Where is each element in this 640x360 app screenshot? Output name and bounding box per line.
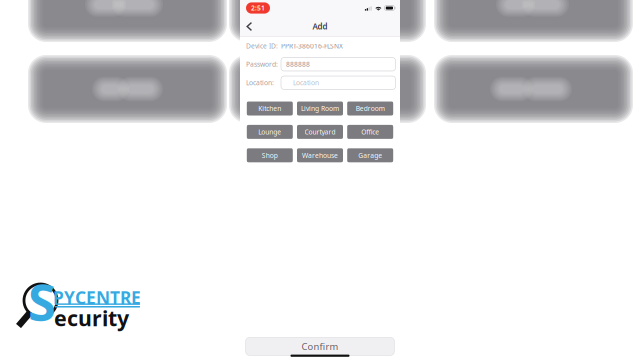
staticText: Kitchen [258, 104, 281, 113]
staticText: Add [312, 21, 327, 32]
button[interactable]: Confirm [246, 337, 394, 355]
staticText: Bedroom [356, 104, 385, 113]
button[interactable]: Lounge [247, 125, 293, 139]
staticText: 2:51 [251, 4, 265, 12]
button[interactable]: Kitchen [247, 101, 293, 115]
staticText: Living Room [301, 104, 339, 113]
staticText: PYCENTRE [53, 286, 141, 309]
button[interactable]: Living Room [297, 101, 343, 115]
button[interactable]: Bedroom [347, 101, 393, 115]
staticText: Office [361, 127, 379, 136]
staticText: S [28, 267, 56, 335]
button[interactable]: Office [347, 125, 393, 139]
button[interactable]: Warehouse [297, 148, 343, 162]
staticText: Lounge [258, 127, 281, 136]
button[interactable]: Back [242, 17, 257, 36]
staticText: Shop [262, 151, 278, 160]
staticText: Device ID: [246, 42, 278, 50]
button[interactable]: Shop [247, 148, 293, 162]
button[interactable]: Garage [347, 148, 393, 162]
staticText: ecurity [54, 304, 129, 332]
staticText: PPRT-386016-FLSNX [281, 42, 343, 50]
staticText: Courtyard [304, 127, 335, 136]
staticText: Warehouse [302, 151, 338, 160]
staticText: Location: [246, 78, 274, 87]
staticText: Garage [358, 151, 382, 160]
staticText: Password: [246, 60, 278, 69]
staticText: Location [293, 78, 319, 87]
button[interactable]: Courtyard [297, 125, 343, 139]
staticText: Confirm [301, 340, 338, 353]
staticText: 888888 [286, 60, 310, 69]
